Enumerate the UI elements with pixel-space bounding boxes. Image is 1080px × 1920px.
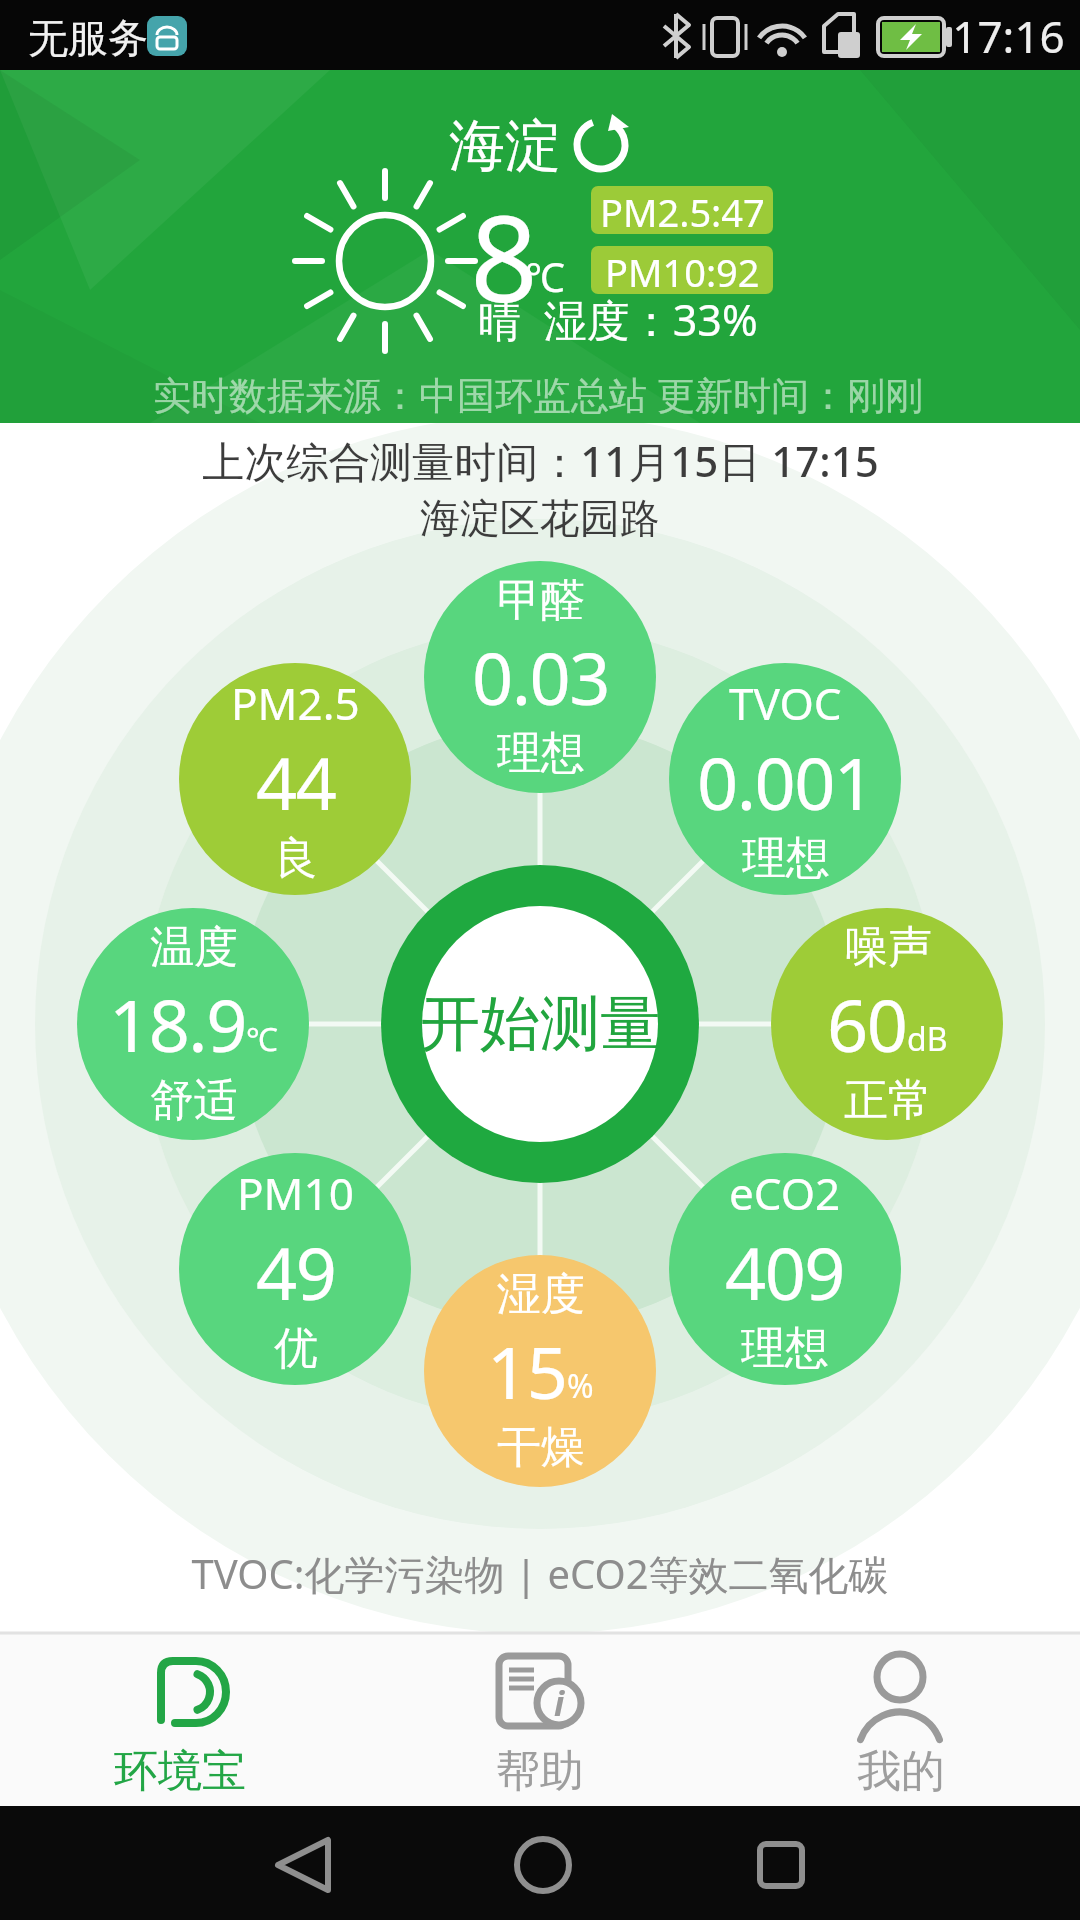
staticText: 0.03 <box>472 628 609 726</box>
staticText: i <box>554 1680 565 1726</box>
staticText: 甲醛 <box>497 573 585 628</box>
staticText: 理想 <box>742 831 830 886</box>
button[interactable]: 甲醛 <box>424 561 656 793</box>
staticText: 实时数据来源：中国环监总站 更新时间：刚刚 <box>153 368 923 420</box>
staticText: 海淀区花园路 <box>420 493 660 543</box>
button[interactable]: eCO2 <box>669 1153 901 1385</box>
staticText: 15 <box>487 1322 567 1420</box>
staticText: 我的 <box>857 1744 945 1799</box>
button[interactable]: TVOC <box>669 663 901 895</box>
button[interactable]: PM10:92 <box>591 246 773 294</box>
staticText: TVOC <box>729 673 842 733</box>
staticText: 湿度 <box>497 1267 585 1322</box>
staticText: 海淀 <box>449 111 561 182</box>
staticText: 晴 湿度：33% <box>478 290 758 349</box>
staticText: 49 <box>256 1223 336 1321</box>
button[interactable] <box>360 1636 720 1806</box>
button[interactable]: 湿度 <box>424 1255 656 1487</box>
staticText: PM10 <box>237 1163 354 1223</box>
button[interactable] <box>381 865 699 1183</box>
button[interactable]: 温度 <box>77 908 309 1140</box>
staticText: PM2.5 <box>231 673 360 733</box>
button[interactable] <box>0 1636 360 1806</box>
staticText: % <box>567 1364 594 1408</box>
staticText: 良 <box>274 831 318 886</box>
staticText: 温度 <box>150 920 238 975</box>
staticText: dB <box>907 1017 948 1061</box>
staticText: TVOC:化学污染物 | eCO2等效二氧化碳 <box>191 1546 889 1601</box>
button[interactable]: PM2.5:47 <box>591 186 773 234</box>
button[interactable]: PM10 <box>179 1153 411 1385</box>
staticText: 理想 <box>497 726 585 781</box>
staticText: ℃ <box>525 249 565 303</box>
staticText: 8 <box>470 176 538 337</box>
staticText: PM10:92 <box>605 246 760 294</box>
staticText: 舒适 <box>150 1073 238 1128</box>
staticText: 正常 <box>844 1073 932 1128</box>
staticText: 噪声 <box>844 920 932 975</box>
staticText: 17:16 <box>952 6 1065 66</box>
staticText: 60 <box>827 975 907 1073</box>
staticText: 环境宝 <box>114 1744 246 1799</box>
staticText: 44 <box>256 733 336 831</box>
button[interactable]: PM2.5 <box>179 663 411 895</box>
staticText: 帮助 <box>496 1744 584 1799</box>
staticText: 409 <box>725 1223 845 1321</box>
staticText: ℃ <box>246 1017 278 1061</box>
staticText: 上次综合测量时间：11月15日 17:15 <box>202 432 879 489</box>
staticText: 18.9 <box>109 975 246 1073</box>
staticText: 0.001 <box>697 733 874 831</box>
staticText: 优 <box>274 1321 318 1376</box>
staticText: 无服务 <box>28 13 148 63</box>
staticText: PM2.5:47 <box>600 186 765 234</box>
staticText: eCO2 <box>729 1163 841 1223</box>
staticText: 开始测量 <box>420 986 660 1062</box>
button[interactable]: 噪声 <box>771 908 1003 1140</box>
staticText: 理想 <box>741 1321 829 1376</box>
staticText: 干燥 <box>497 1420 585 1475</box>
button[interactable] <box>720 1636 1080 1806</box>
